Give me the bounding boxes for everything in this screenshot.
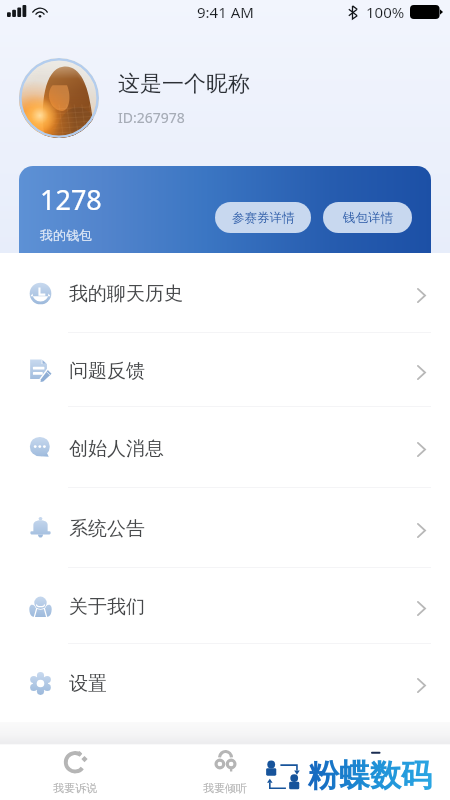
button[interactable]: 系统公告 <box>0 488 450 568</box>
staticText: 我要诉说 <box>53 781 97 795</box>
staticText: 参赛券详情 <box>232 210 295 226</box>
staticText: 100% <box>366 2 405 22</box>
staticText: 问题反馈 <box>69 359 145 383</box>
button[interactable]: 我要诉说 <box>0 722 150 800</box>
button[interactable] <box>19 58 99 138</box>
button[interactable]: 问题反馈 <box>0 333 450 407</box>
button[interactable]: 我要倾听 <box>150 722 300 800</box>
staticText: 钱包详情 <box>343 210 393 226</box>
button[interactable]: 1278 <box>19 166 431 253</box>
button[interactable]: 创始人消息 <box>0 407 450 488</box>
staticText: 创始人消息 <box>69 437 164 461</box>
button[interactable]: 关于我们 <box>0 568 450 644</box>
staticText: 系统公告 <box>69 517 145 541</box>
button[interactable]: 我的 <box>300 722 450 800</box>
staticText: 关于我们 <box>69 595 145 619</box>
staticText: 9:41 AM <box>197 2 254 22</box>
staticText: 粉蝶数码 <box>308 756 432 795</box>
staticText: 我的 <box>364 781 386 795</box>
button[interactable]: 钱包详情 <box>323 202 412 233</box>
staticText: ID:267978 <box>118 108 185 127</box>
staticText: 我的聊天历史 <box>69 282 183 306</box>
staticText: 1278 <box>40 181 102 218</box>
staticText: 设置 <box>69 672 107 696</box>
staticText: 我的钱包 <box>40 227 92 243</box>
button[interactable]: 我的聊天历史 <box>0 253 450 333</box>
staticText: 这是一个昵称 <box>118 70 250 98</box>
button[interactable]: 参赛券详情 <box>215 202 311 233</box>
staticText: 我要倾听 <box>203 781 247 795</box>
button[interactable]: 设置 <box>0 644 450 722</box>
